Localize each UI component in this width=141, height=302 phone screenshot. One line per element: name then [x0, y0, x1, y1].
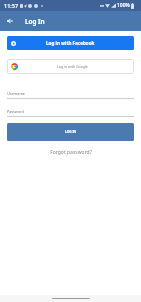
button[interactable]: Log in with Google: [7, 59, 134, 74]
button[interactable]: Back: [2, 13, 18, 29]
staticText: LOG IN: [65, 130, 77, 134]
staticText: 11:57: [4, 2, 19, 9]
staticText: 100%: [117, 2, 130, 9]
staticText: Forgot password?: [50, 149, 92, 156]
staticText: Password: [7, 109, 24, 114]
staticText: Log in with Facebook: [46, 40, 95, 46]
button[interactable]: LOG IN: [7, 123, 134, 141]
button[interactable]: Log in with Facebook: [7, 36, 134, 50]
staticText: Log In: [25, 17, 45, 26]
button[interactable]: Forgot password?: [0, 149, 141, 156]
staticText: Username: [7, 91, 25, 96]
staticText: Log in with Google: [57, 64, 88, 69]
